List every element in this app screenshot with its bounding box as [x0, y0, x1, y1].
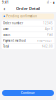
- button[interactable]: Back: [2, 5, 7, 11]
- staticText: Order Detail: [16, 6, 40, 11]
- button[interactable]: Order number: [1, 20, 54, 26]
- staticText: ‹: [3, 5, 5, 12]
- staticText: Date: [3, 27, 9, 31]
- staticText: Continue: [21, 91, 35, 95]
- staticText: Status: [3, 33, 10, 36]
- staticText: Payment method: [3, 39, 26, 42]
- staticText: 12345: [43, 21, 53, 25]
- staticText: Order number: [3, 21, 23, 25]
- button[interactable]: Status: [1, 32, 54, 37]
- staticText: ıl ◦ ▮: [47, 1, 54, 4]
- staticText: $42.00: [42, 45, 53, 48]
- staticText: Total: [3, 45, 9, 48]
- staticText: Pending confirmation: [6, 14, 37, 18]
- staticText: Visa ••3421: [37, 39, 53, 42]
- button[interactable]: Continue: [2, 90, 54, 96]
- button[interactable]: Total: [1, 44, 54, 49]
- staticText: Apr 3: [45, 27, 53, 31]
- button[interactable]: Payment method: [1, 38, 54, 43]
- staticText: 9:41: [2, 1, 9, 4]
- button[interactable]: Date: [1, 26, 54, 32]
- staticText: Paid: [47, 33, 53, 36]
